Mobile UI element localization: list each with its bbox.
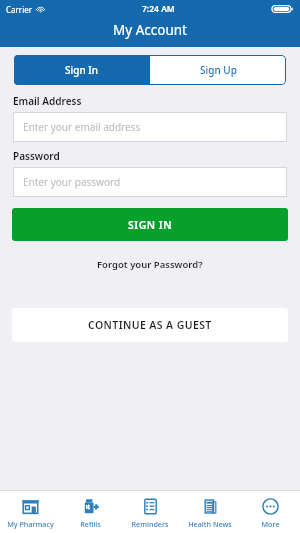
staticText: Email Address	[13, 94, 82, 108]
button[interactable]: Refills	[60, 491, 120, 533]
button[interactable]: Forgot your Password?	[87, 255, 213, 274]
staticText: My Account	[113, 21, 187, 39]
button[interactable]: My Pharmacy	[0, 491, 60, 533]
button[interactable]: Sign Up	[150, 55, 286, 85]
button[interactable]: Sign In	[14, 55, 150, 85]
staticText: My Pharmacy	[7, 519, 54, 529]
button[interactable]: Reminders	[120, 491, 180, 533]
button[interactable]: Health News	[180, 491, 240, 533]
staticText: Enter your password	[23, 175, 121, 189]
button[interactable]: More	[240, 491, 300, 533]
button[interactable]: SIGN IN	[12, 208, 288, 241]
staticText: SIGN IN	[128, 218, 173, 232]
staticText: Health News	[188, 519, 232, 529]
button[interactable]: Enter your email address	[13, 112, 287, 142]
staticText: Sign Up	[200, 63, 237, 77]
staticText: More	[261, 519, 280, 529]
button[interactable]: CONTINUE AS A GUEST	[12, 308, 288, 342]
staticText: CONTINUE AS A GUEST	[88, 318, 212, 332]
staticText: Refills	[80, 519, 101, 529]
staticText: Password	[13, 149, 60, 163]
staticText: Forgot your Password?	[97, 258, 203, 271]
button[interactable]: Enter your password	[13, 167, 287, 197]
staticText: Reminders	[131, 519, 169, 529]
staticText: Carrier	[6, 4, 33, 15]
staticText: Enter your email address	[23, 120, 141, 134]
staticText: 7:24 AM	[142, 3, 175, 15]
staticText: Sign In	[65, 63, 99, 77]
